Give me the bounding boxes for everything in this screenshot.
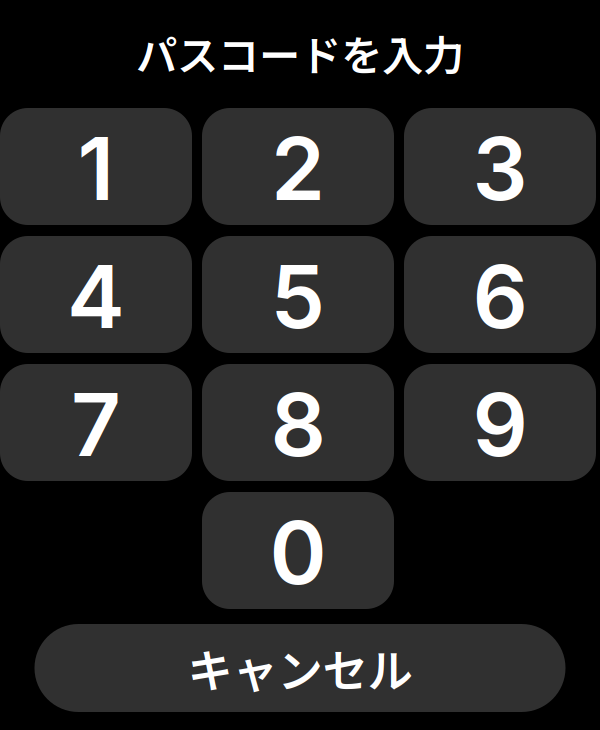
staticText: 6 bbox=[472, 244, 527, 349]
button[interactable]: 4 bbox=[0, 236, 192, 353]
button[interactable]: 7 bbox=[0, 364, 192, 481]
staticText: パスコードを入力 bbox=[136, 23, 464, 83]
staticText: 2 bbox=[271, 116, 325, 221]
staticText: キャンセル bbox=[187, 635, 412, 701]
staticText: 9 bbox=[472, 372, 527, 477]
button[interactable]: キャンセル bbox=[34, 624, 565, 712]
button[interactable]: 1 bbox=[0, 108, 192, 225]
button[interactable]: 5 bbox=[202, 236, 394, 353]
staticText: 8 bbox=[270, 372, 325, 477]
button[interactable]: 8 bbox=[202, 364, 394, 481]
button[interactable]: 2 bbox=[202, 108, 394, 225]
staticText: 1 bbox=[77, 116, 114, 221]
button[interactable]: 0 bbox=[202, 492, 394, 609]
staticText: 7 bbox=[71, 372, 121, 477]
staticText: 0 bbox=[269, 500, 326, 605]
staticText: 5 bbox=[270, 244, 325, 349]
staticText: 3 bbox=[472, 116, 527, 221]
button[interactable]: 6 bbox=[404, 236, 596, 353]
button[interactable]: 9 bbox=[404, 364, 596, 481]
button[interactable]: 3 bbox=[404, 108, 596, 225]
staticText: 4 bbox=[67, 244, 125, 349]
